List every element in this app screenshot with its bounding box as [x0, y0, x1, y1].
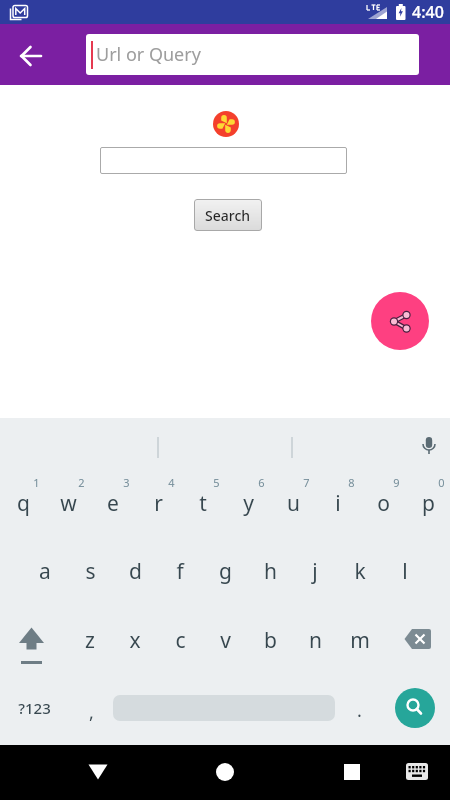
button[interactable]: s: [66, 551, 114, 591]
button[interactable]: f: [156, 551, 204, 591]
button[interactable]: v: [201, 620, 249, 660]
button[interactable]: 5: [192, 462, 240, 502]
button[interactable]: Search: [194, 199, 262, 231]
button[interactable]: 7: [282, 462, 330, 502]
button[interactable]: x: [111, 620, 159, 660]
staticText: v: [220, 626, 231, 655]
button[interactable]: q: [0, 483, 47, 523]
staticText: z: [85, 626, 95, 655]
button[interactable]: p: [404, 483, 450, 523]
button[interactable]: k: [336, 551, 384, 591]
staticText: g: [219, 557, 232, 586]
staticText: t: [199, 489, 207, 518]
staticText: x: [129, 626, 141, 655]
staticText: e: [107, 489, 119, 518]
button[interactable]: 1: [0, 418, 450, 745]
staticText: h: [264, 557, 277, 586]
staticText: 6: [258, 475, 265, 490]
button[interactable]: ,: [67, 692, 115, 732]
staticText: 5: [213, 475, 220, 490]
button[interactable]: 6: [237, 462, 285, 502]
button[interactable]: 8: [327, 462, 375, 502]
button[interactable]: 1: [12, 462, 60, 502]
staticText: 1: [33, 475, 40, 490]
staticText: f: [176, 557, 184, 586]
button[interactable]: [395, 688, 435, 728]
staticText: n: [309, 626, 322, 655]
staticText: 8: [348, 475, 355, 490]
button[interactable]: o: [359, 483, 407, 523]
button[interactable]: 9: [372, 462, 420, 502]
staticText: ,: [89, 700, 94, 725]
button[interactable]: 2: [57, 462, 105, 502]
button[interactable]: j: [291, 551, 339, 591]
staticText: p: [422, 489, 435, 518]
button[interactable]: n: [291, 620, 339, 660]
staticText: o: [377, 489, 390, 518]
button[interactable]: .: [335, 690, 383, 730]
button[interactable]: [332, 752, 372, 792]
button[interactable]: i: [314, 483, 362, 523]
button[interactable]: l: [381, 551, 429, 591]
staticText: 9: [393, 475, 400, 490]
staticText: s: [85, 557, 96, 586]
button[interactable]: b: [246, 620, 294, 660]
button[interactable]: [205, 752, 245, 792]
button[interactable]: [4, 29, 60, 85]
button[interactable]: 3: [102, 462, 150, 502]
button[interactable]: e: [89, 483, 137, 523]
button[interactable]: h: [246, 551, 294, 591]
button[interactable]: [403, 627, 435, 651]
button[interactable]: ?123: [10, 688, 58, 728]
staticText: l: [402, 557, 408, 586]
staticText: m: [350, 626, 370, 655]
staticText: Url or Query: [96, 42, 201, 67]
button[interactable]: u: [269, 483, 317, 523]
button[interactable]: w: [44, 483, 92, 523]
staticText: j: [312, 557, 318, 586]
button[interactable]: [17, 625, 47, 655]
button[interactable]: c: [156, 620, 204, 660]
button[interactable]: a: [21, 551, 69, 591]
staticText: q: [17, 489, 30, 518]
button[interactable]: z: [66, 620, 114, 660]
button[interactable]: Url or Query: [86, 34, 419, 75]
button[interactable]: [371, 292, 429, 350]
button[interactable]: t: [179, 483, 227, 523]
button[interactable]: y: [224, 483, 272, 523]
staticText: 2: [78, 475, 85, 490]
staticText: ?123: [18, 698, 51, 718]
button[interactable]: [397, 752, 437, 792]
button[interactable]: [78, 752, 118, 792]
staticText: 4:40: [412, 1, 444, 23]
staticText: 0: [438, 475, 445, 490]
button[interactable]: m: [336, 620, 384, 660]
staticText: 4: [168, 475, 175, 490]
button[interactable]: d: [111, 551, 159, 591]
staticText: u: [287, 489, 300, 518]
staticText: i: [335, 489, 341, 518]
staticText: 3: [123, 475, 130, 490]
staticText: w: [60, 489, 77, 518]
staticText: c: [175, 626, 186, 655]
button[interactable]: r: [134, 483, 182, 523]
button[interactable]: 0: [417, 462, 450, 502]
staticText: y: [243, 489, 254, 518]
button[interactable]: g: [201, 551, 249, 591]
staticText: r: [154, 489, 163, 518]
button[interactable]: 4: [147, 462, 195, 502]
button[interactable]: [100, 147, 347, 174]
staticText: b: [264, 626, 277, 655]
staticText: 7: [303, 475, 310, 490]
staticText: a: [39, 557, 51, 586]
staticText: .: [357, 698, 362, 723]
staticText: k: [354, 557, 366, 586]
staticText: Search: [205, 206, 251, 225]
staticText: d: [129, 557, 142, 586]
